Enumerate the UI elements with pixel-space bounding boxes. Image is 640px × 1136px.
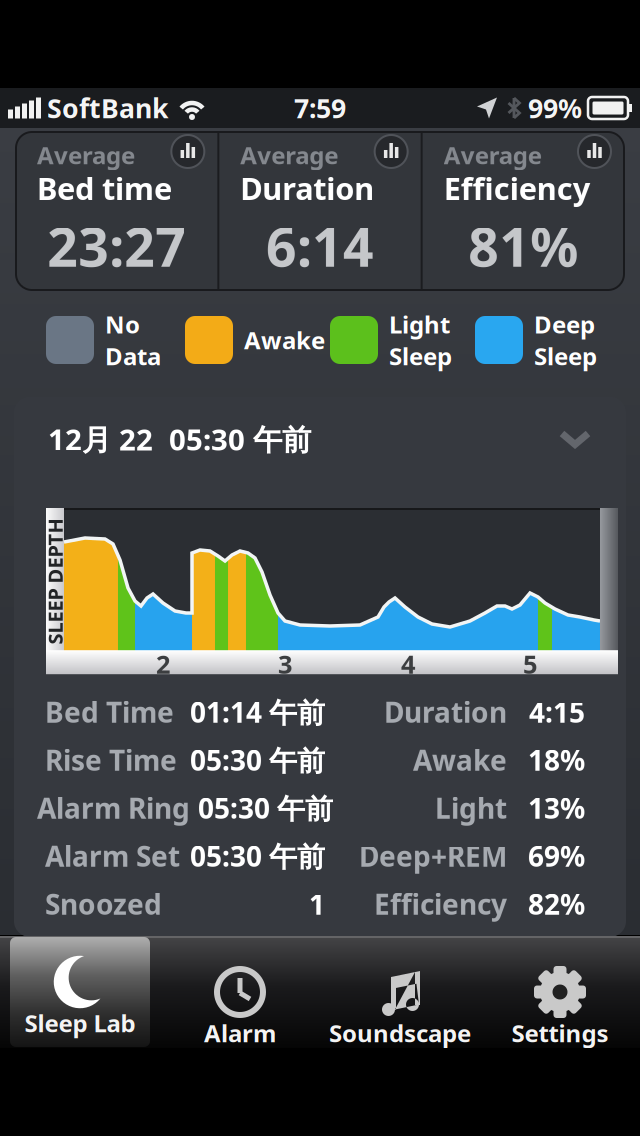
staticText: 05:30 午前 xyxy=(198,789,333,827)
staticText: 82% xyxy=(528,885,585,923)
button[interactable]: Show statistics chart xyxy=(578,135,611,168)
staticText: Awake xyxy=(244,324,325,356)
staticText: Average xyxy=(37,139,135,171)
staticText: Light xyxy=(389,308,450,340)
staticText: Deep+REM xyxy=(359,837,507,875)
staticText: SoftBank xyxy=(47,90,169,126)
staticText: Sleep xyxy=(389,340,452,372)
staticText: 13% xyxy=(528,789,585,827)
staticText: 3 xyxy=(278,647,292,681)
staticText: 23:27 xyxy=(47,211,186,281)
staticText: Snoozed xyxy=(45,885,162,923)
button[interactable]: Alarm xyxy=(160,936,320,1048)
staticText: 7:59 xyxy=(294,90,346,126)
staticText: Light xyxy=(435,789,507,827)
staticText: Alarm Ring xyxy=(37,789,190,827)
button[interactable]: Sleep Lab xyxy=(0,936,160,1048)
staticText: 1 xyxy=(309,885,325,923)
button[interactable]: Soundscape xyxy=(320,936,480,1048)
staticText: Soundscape xyxy=(329,1017,471,1049)
staticText: 4:15 xyxy=(529,693,585,731)
staticText: Efficiency xyxy=(444,168,591,208)
staticText: Efficiency xyxy=(374,885,507,923)
staticText: Duration xyxy=(240,168,374,208)
staticText: Duration xyxy=(384,693,507,731)
staticText: Settings xyxy=(511,1017,608,1049)
staticText: Rise Time xyxy=(45,741,177,779)
staticText: 6:14 xyxy=(266,211,374,281)
staticText: Alarm xyxy=(204,1017,276,1049)
staticText: Sleep Lab xyxy=(24,1007,135,1039)
staticText: 5 xyxy=(523,647,537,681)
staticText: No xyxy=(105,308,140,340)
staticText: Average xyxy=(444,139,542,171)
staticText: 18% xyxy=(528,741,585,779)
staticText: 12月 22 05:30 午前 xyxy=(48,419,311,458)
button[interactable]: Show statistics chart xyxy=(375,135,408,168)
staticText: Deep xyxy=(534,308,595,340)
staticText: Awake xyxy=(413,741,507,779)
button[interactable]: Show statistics chart xyxy=(171,135,204,168)
staticText: 99% xyxy=(528,90,582,126)
staticText: Bed Time xyxy=(45,693,174,731)
staticText: 01:14 午前 xyxy=(190,693,325,731)
staticText: 4 xyxy=(401,647,415,681)
staticText: SLEEP DEPTH xyxy=(0,568,118,595)
button[interactable]: 12月 22 05:30 午前, expand xyxy=(14,397,626,481)
staticText: Data xyxy=(105,340,161,372)
staticText: Bed time xyxy=(37,168,172,208)
staticText: 2 xyxy=(156,647,170,681)
staticText: 05:30 午前 xyxy=(190,741,325,779)
button[interactable]: Settings xyxy=(480,936,640,1048)
staticText: 69% xyxy=(528,837,585,875)
staticText: Average xyxy=(240,139,338,171)
staticText: 81% xyxy=(468,211,578,281)
staticText: Sleep xyxy=(534,340,597,372)
staticText: Alarm Set xyxy=(45,837,180,875)
staticText: 05:30 午前 xyxy=(190,837,325,875)
